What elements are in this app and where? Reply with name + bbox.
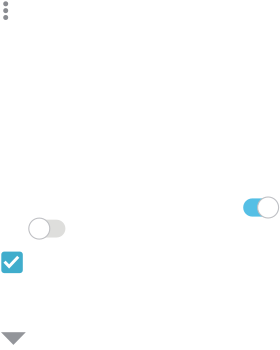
button[interactable]: Switch, on bbox=[243, 197, 279, 218]
button[interactable]: More options bbox=[3, 1, 8, 20]
button[interactable]: Switch, off bbox=[29, 218, 65, 239]
button[interactable]: Expand bbox=[1, 332, 26, 345]
button[interactable]: Checkbox, checked bbox=[1, 252, 23, 273]
